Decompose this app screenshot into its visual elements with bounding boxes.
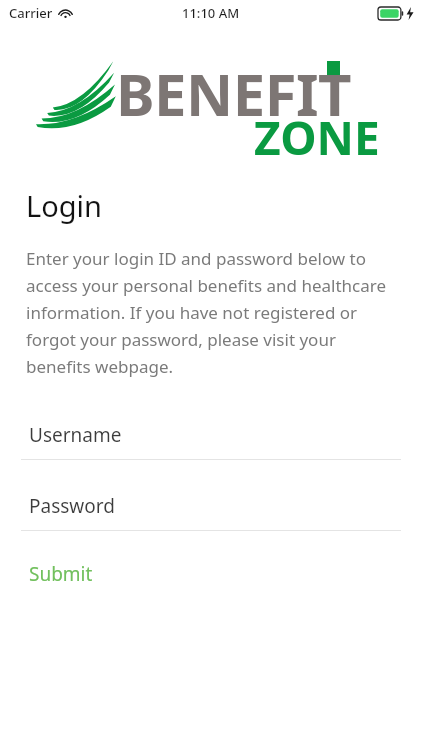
button[interactable]: Username [21, 422, 401, 460]
staticText: Password [29, 493, 115, 519]
staticText: Submit [29, 561, 93, 587]
staticText: Username [29, 422, 122, 448]
staticText: 11:10 AM [182, 4, 240, 22]
staticText: ZONE [254, 106, 380, 169]
button[interactable]: Password [21, 493, 401, 531]
staticText: Carrier [9, 4, 53, 22]
staticText: Login [26, 186, 102, 225]
staticText: Enter your login ID and password below t… [26, 247, 396, 378]
staticText: BENEFIT [116, 54, 352, 133]
button[interactable]: Submit [21, 553, 101, 595]
